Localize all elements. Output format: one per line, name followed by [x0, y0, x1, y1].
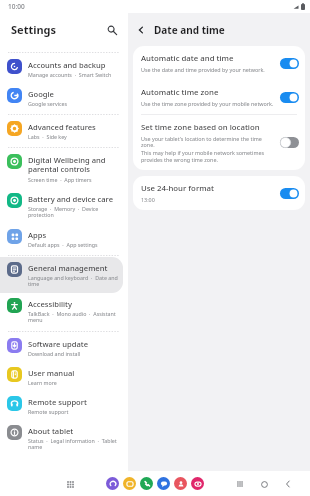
staticText: Battery and device care [28, 194, 113, 204]
button[interactable]: Google [0, 83, 123, 112]
staticText: General management [28, 263, 108, 273]
button[interactable]: chat [157, 477, 170, 490]
button[interactable]: About tablet [0, 420, 123, 456]
staticText: Status · Legal information · Tablet name [28, 437, 119, 451]
staticText: Accessibility [28, 299, 72, 309]
button[interactable]: On [280, 58, 299, 69]
button[interactable]: person [174, 477, 187, 490]
staticText: Advanced features [28, 122, 96, 132]
staticText: Accounts and backup [28, 60, 106, 70]
button[interactable]: Advanced features [0, 116, 123, 145]
button[interactable]: cam [191, 477, 204, 490]
button[interactable]: Apps [63, 477, 77, 491]
staticText: 13:00 [141, 196, 155, 203]
button[interactable]: Software update [0, 333, 123, 362]
button[interactable]: Home [258, 478, 270, 490]
staticText: Google services [28, 100, 68, 107]
button[interactable]: Set time zone based on location [133, 115, 305, 170]
staticText: Use your tablet's location to determine … [141, 135, 275, 149]
staticText: 10:00 [8, 2, 25, 11]
staticText: Screen time · App timers [28, 176, 92, 183]
button[interactable]: Accessibility [0, 293, 123, 329]
staticText: Apps [28, 230, 47, 240]
staticText: Use 24-hour format [141, 183, 215, 194]
staticText: Remote support [28, 408, 69, 415]
staticText: Learn more [28, 379, 57, 386]
button[interactable]: Off [280, 137, 299, 148]
button[interactable]: Back [282, 478, 294, 490]
staticText: Settings [11, 22, 57, 37]
button[interactable]: Accounts and backup [0, 54, 123, 83]
button[interactable]: swirl [106, 477, 119, 490]
button[interactable]: Automatic date and time [133, 46, 305, 80]
button[interactable]: Use 24-hour format [133, 176, 305, 210]
button[interactable]: Remote support [0, 391, 123, 420]
button[interactable]: Back [133, 22, 149, 38]
staticText: Google [28, 89, 54, 99]
button[interactable]: Recents [234, 478, 246, 490]
staticText: Date and time [154, 23, 225, 37]
button[interactable]: folder [123, 477, 136, 490]
button[interactable]: Apps [0, 224, 123, 253]
button[interactable]: User manual [0, 362, 123, 391]
staticText: User manual [28, 368, 75, 378]
staticText: Default apps · App settings [28, 241, 98, 248]
button[interactable]: On [280, 188, 299, 199]
button[interactable]: General management [0, 257, 123, 293]
staticText: Use the date and time provided by your n… [141, 66, 265, 73]
staticText: This may help if your mobile network som… [141, 149, 265, 156]
staticText: Labs · Side key [28, 133, 67, 140]
staticText: provides the wrong time zone. [141, 156, 218, 163]
button[interactable]: Automatic time zone [133, 80, 305, 114]
staticText: Download and install [28, 350, 81, 357]
staticText: About tablet [28, 426, 74, 436]
button[interactable]: Search [104, 22, 120, 38]
staticText: Use the time zone provided by your mobil… [141, 100, 274, 107]
staticText: Set time zone based on location [141, 122, 260, 133]
staticText: Software update [28, 339, 89, 349]
staticText: Automatic date and time [141, 53, 234, 64]
staticText: Automatic time zone [141, 87, 219, 98]
staticText: Storage · Memory · Device protection [28, 205, 119, 219]
staticText: Language and keyboard · Date and time [28, 274, 119, 288]
button[interactable]: On [280, 92, 299, 103]
staticText: TalkBack · Mono audio · Assistant menu [28, 310, 119, 324]
button[interactable]: Battery and device care [0, 188, 123, 224]
staticText: Remote support [28, 397, 87, 407]
staticText: Digital Wellbeing and parental controls [28, 155, 119, 175]
button[interactable]: Digital Wellbeing and parental controls [0, 149, 123, 188]
button[interactable]: phone [140, 477, 153, 490]
staticText: Manage accounts · Smart Switch [28, 71, 112, 78]
